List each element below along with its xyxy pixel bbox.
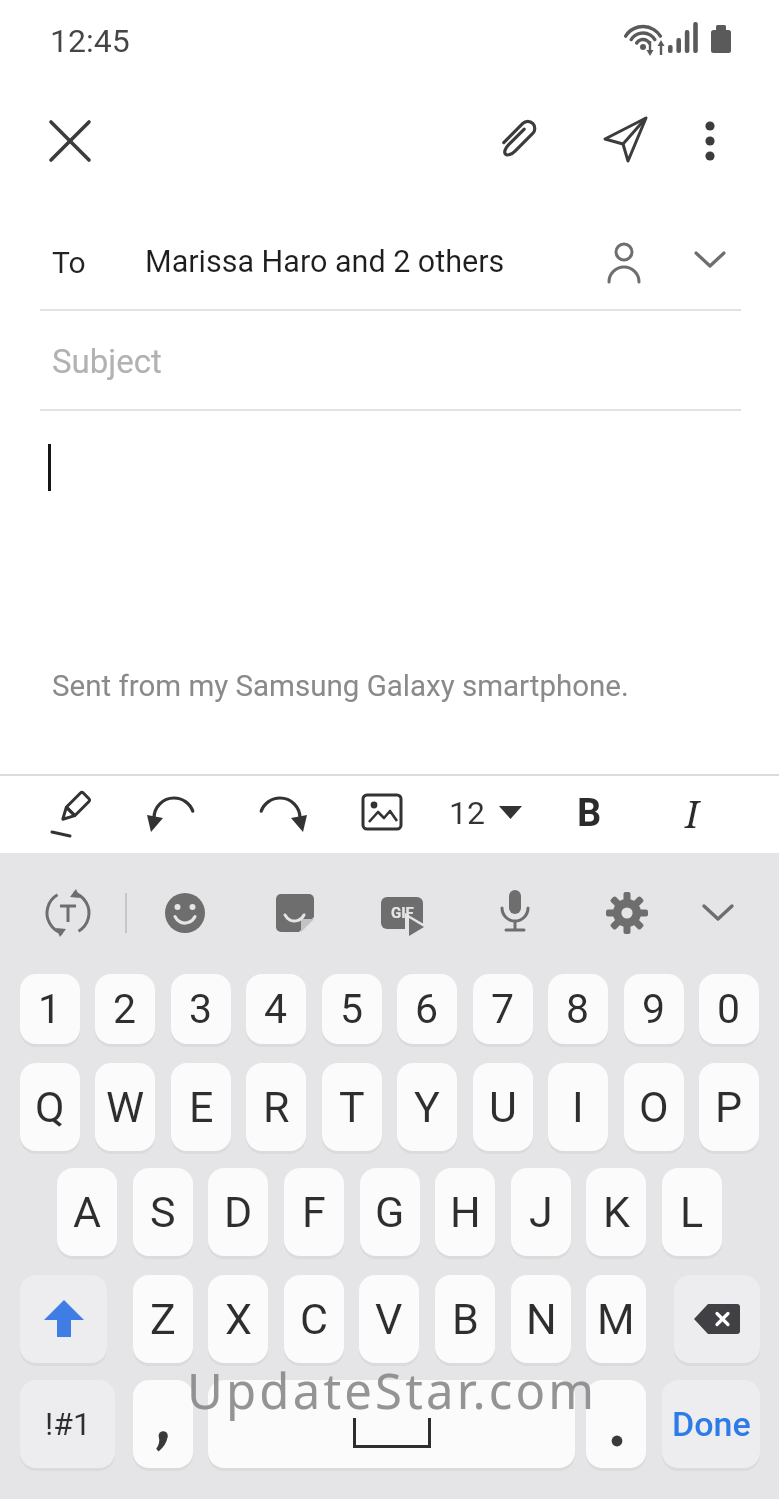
- staticText: S: [150, 1187, 176, 1237]
- button[interactable]: L: [662, 1168, 722, 1256]
- button[interactable]: R: [246, 1063, 306, 1151]
- button[interactable]: A: [57, 1168, 117, 1256]
- staticText: E: [189, 1082, 214, 1132]
- staticText: 12: [449, 794, 485, 832]
- button[interactable]: 3: [171, 974, 231, 1044]
- button[interactable]: [603, 889, 651, 937]
- button[interactable]: G: [360, 1168, 420, 1256]
- button[interactable]: 4: [246, 974, 306, 1044]
- staticText: UpdateStar.com: [187, 1357, 598, 1424]
- button[interactable]: [434, 788, 534, 838]
- button[interactable]: [667, 788, 717, 838]
- button[interactable]: V: [359, 1275, 419, 1363]
- staticText: Sent from my Samsung Galaxy smartphone.: [52, 669, 629, 704]
- button[interactable]: [163, 891, 207, 935]
- button[interactable]: J: [511, 1168, 571, 1256]
- staticText: 9: [642, 985, 666, 1033]
- button[interactable]: 9: [624, 974, 684, 1044]
- button[interactable]: [361, 791, 405, 835]
- staticText: U: [489, 1082, 517, 1132]
- staticText: L: [680, 1187, 704, 1237]
- button[interactable]: N: [511, 1275, 571, 1363]
- staticText: P: [715, 1082, 743, 1132]
- button[interactable]: [696, 898, 740, 928]
- button[interactable]: [146, 790, 202, 840]
- button[interactable]: Q: [20, 1063, 80, 1151]
- staticText: T: [339, 1082, 365, 1132]
- button[interactable]: [490, 109, 550, 169]
- button[interactable]: S: [133, 1168, 193, 1256]
- staticText: B: [577, 791, 602, 836]
- button[interactable]: Z: [133, 1275, 193, 1363]
- button[interactable]: !#1: [20, 1380, 115, 1468]
- button[interactable]: W: [95, 1063, 155, 1151]
- button[interactable]: [683, 109, 737, 163]
- staticText: I: [572, 1082, 584, 1132]
- button[interactable]: I: [548, 1063, 608, 1151]
- button[interactable]: Y: [397, 1063, 457, 1151]
- button[interactable]: Done: [662, 1380, 760, 1468]
- button[interactable]: [38, 109, 102, 173]
- staticText: G: [375, 1187, 405, 1237]
- staticText: GIF: [391, 904, 414, 922]
- staticText: B: [452, 1294, 479, 1344]
- staticText: F: [302, 1187, 326, 1237]
- button[interactable]: P: [699, 1063, 759, 1151]
- button[interactable]: O: [624, 1063, 684, 1151]
- button[interactable]: C: [284, 1275, 344, 1363]
- button[interactable]: U: [473, 1063, 533, 1151]
- button[interactable]: [0, 220, 779, 308]
- staticText: 7: [491, 985, 515, 1033]
- staticText: K: [603, 1187, 630, 1237]
- staticText: H: [450, 1187, 481, 1237]
- button[interactable]: [596, 109, 656, 169]
- button[interactable]: [586, 1380, 646, 1468]
- staticText: To: [52, 245, 86, 280]
- button[interactable]: 7: [473, 974, 533, 1044]
- button[interactable]: [133, 1380, 193, 1468]
- button[interactable]: K: [586, 1168, 646, 1256]
- button[interactable]: [674, 1275, 760, 1363]
- button[interactable]: M: [586, 1275, 646, 1363]
- staticText: X: [225, 1294, 252, 1344]
- button[interactable]: 5: [322, 974, 382, 1044]
- button[interactable]: H: [435, 1168, 495, 1256]
- staticText: Done: [672, 1404, 751, 1444]
- staticText: Subject: [52, 342, 162, 381]
- button[interactable]: [564, 788, 614, 838]
- staticText: W: [106, 1082, 145, 1132]
- button[interactable]: F: [284, 1168, 344, 1256]
- button[interactable]: [273, 891, 317, 935]
- button[interactable]: B: [435, 1275, 495, 1363]
- staticText: Q: [35, 1082, 65, 1132]
- staticText: O: [639, 1082, 669, 1132]
- button[interactable]: [0, 312, 779, 409]
- button[interactable]: [208, 1380, 575, 1468]
- button[interactable]: [46, 788, 98, 840]
- staticText: C: [300, 1294, 328, 1344]
- button[interactable]: [252, 790, 308, 840]
- staticText: 4: [264, 985, 288, 1033]
- staticText: 12:45: [50, 22, 130, 60]
- staticText: 8: [566, 985, 590, 1033]
- button[interactable]: [20, 1275, 107, 1363]
- button[interactable]: [42, 887, 94, 939]
- button[interactable]: E: [171, 1063, 231, 1151]
- button[interactable]: GIF: [381, 891, 437, 935]
- button[interactable]: [493, 887, 537, 939]
- staticText: !#1: [45, 1405, 91, 1443]
- staticText: R: [263, 1082, 290, 1132]
- button[interactable]: 1: [20, 974, 80, 1044]
- staticText: 3: [189, 985, 213, 1033]
- button[interactable]: 8: [548, 974, 608, 1044]
- button[interactable]: 6: [397, 974, 457, 1044]
- staticText: N: [526, 1294, 557, 1344]
- staticText: 2: [113, 985, 137, 1033]
- button[interactable]: 0: [699, 974, 759, 1044]
- button[interactable]: T: [322, 1063, 382, 1151]
- button[interactable]: 2: [95, 974, 155, 1044]
- button[interactable]: X: [208, 1275, 268, 1363]
- staticText: 5: [340, 985, 364, 1033]
- button[interactable]: D: [208, 1168, 268, 1256]
- staticText: Marissa Haro and 2 others: [145, 244, 505, 280]
